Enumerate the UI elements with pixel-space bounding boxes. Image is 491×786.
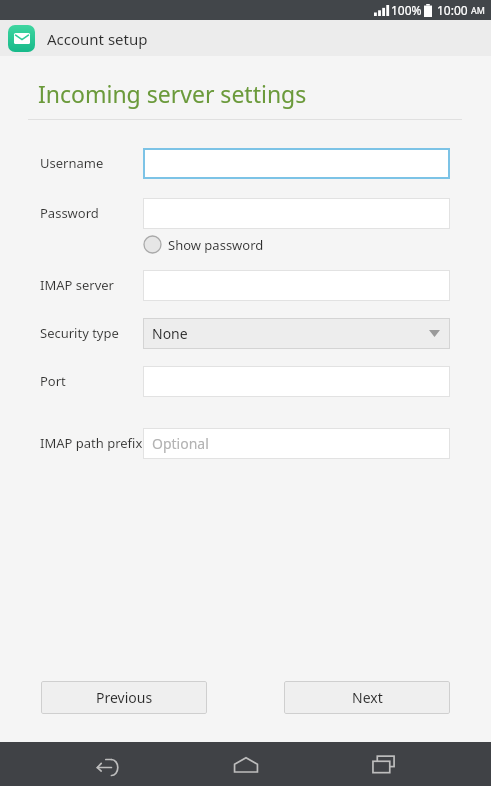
button[interactable]: Next — [284, 681, 450, 714]
staticText: Password — [40, 204, 99, 222]
staticText: None — [152, 324, 188, 343]
button[interactable]: Recent apps — [352, 742, 416, 786]
staticText: Show password — [168, 236, 264, 254]
button[interactable]: None — [143, 318, 450, 349]
button[interactable] — [143, 366, 450, 397]
staticText: Account setup — [47, 29, 148, 49]
staticText: AM — [471, 4, 485, 16]
staticText: 100% — [391, 2, 422, 18]
staticText: Incoming server settings — [38, 78, 307, 109]
button[interactable] — [143, 198, 450, 229]
button[interactable] — [143, 270, 450, 301]
staticText: IMAP path prefix — [40, 434, 143, 452]
staticText: Username — [40, 154, 104, 172]
button[interactable]: Home — [214, 742, 278, 786]
button[interactable]: Show password — [143, 235, 264, 254]
staticText: IMAP server — [40, 276, 114, 294]
staticText: Previous — [96, 688, 153, 707]
other: Email app icon — [8, 25, 35, 52]
staticText: Port — [40, 372, 66, 390]
button[interactable]: Back — [75, 742, 139, 786]
button[interactable]: Optional — [143, 428, 450, 459]
staticText: 10:00 — [437, 2, 468, 18]
staticText: Security type — [40, 324, 119, 342]
staticText: Optional — [152, 434, 209, 453]
button[interactable]: Previous — [41, 681, 207, 714]
button[interactable] — [143, 148, 450, 179]
staticText: Next — [352, 688, 383, 707]
